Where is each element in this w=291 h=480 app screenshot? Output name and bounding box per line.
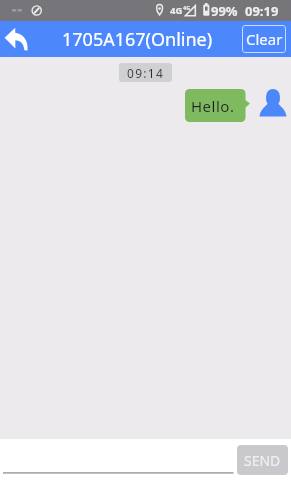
button[interactable]: Back xyxy=(0,21,36,57)
staticText: 09:19 xyxy=(245,2,279,20)
button[interactable]: Contact avatar xyxy=(259,89,286,122)
staticText: 4G xyxy=(170,4,183,17)
staticText: 1705A167(Online) xyxy=(62,27,213,52)
button[interactable]: Hello. xyxy=(185,89,250,122)
staticText: Clear xyxy=(246,29,283,49)
staticText: 09:14 xyxy=(127,65,165,81)
staticText: 99% xyxy=(211,2,238,20)
staticText: SEND xyxy=(244,451,281,470)
button[interactable]: SEND xyxy=(237,445,288,475)
staticText: Hello. xyxy=(191,96,235,116)
button[interactable]: Clear xyxy=(242,25,286,53)
staticText: 4G xyxy=(183,4,191,11)
